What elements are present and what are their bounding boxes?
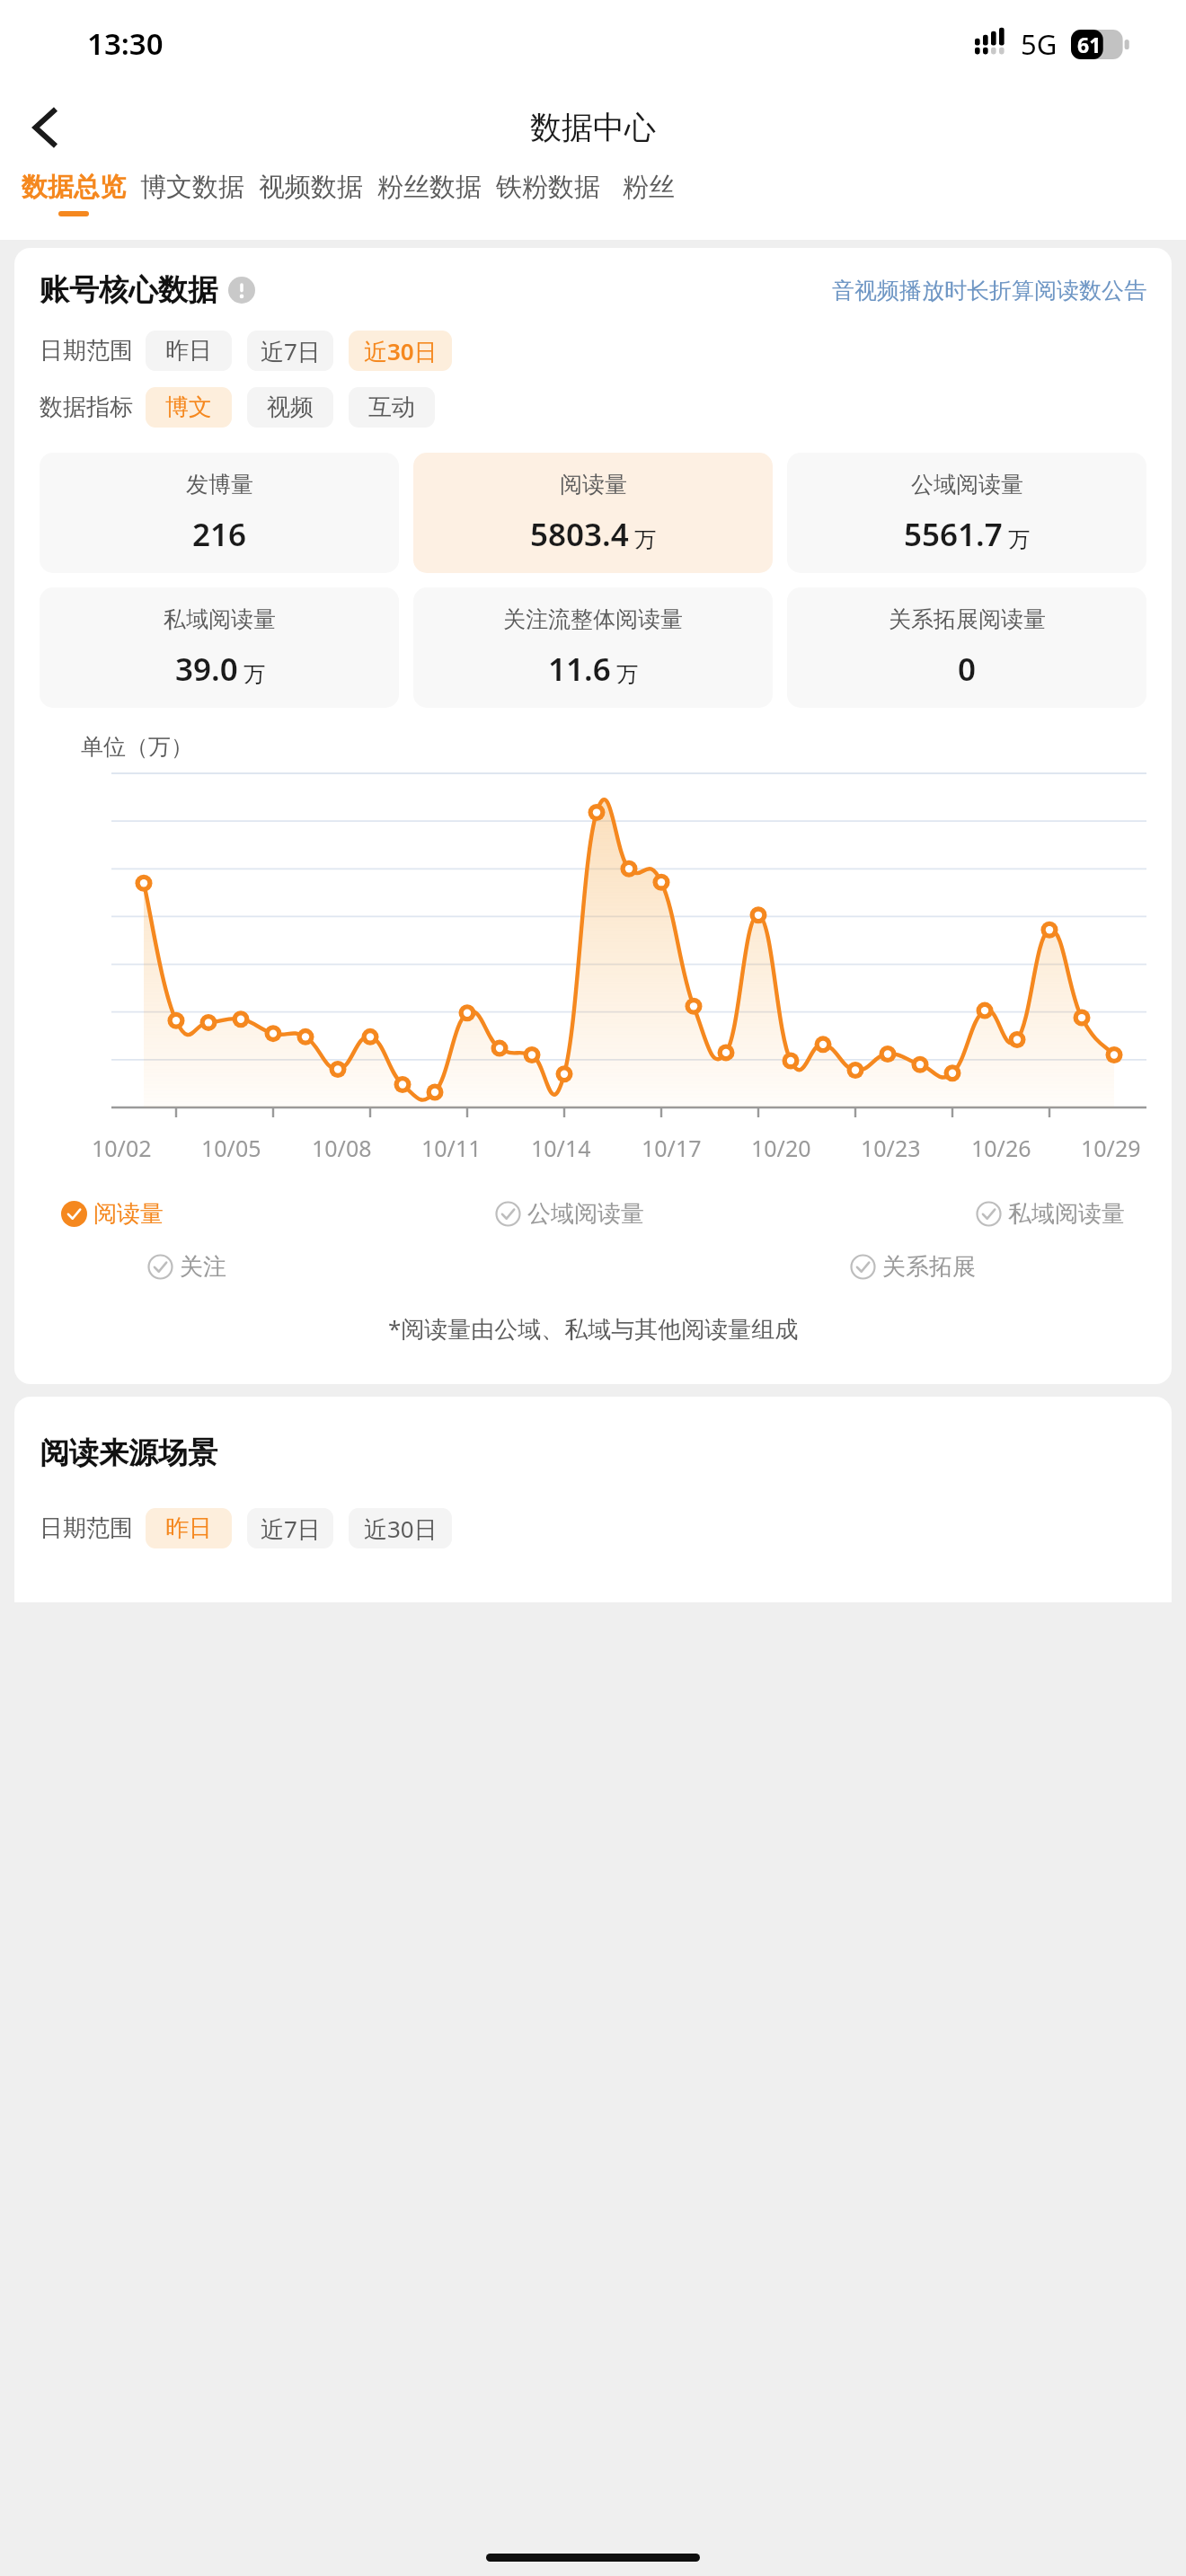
staticText: 阅读来源场景 <box>40 1434 217 1472</box>
staticText: 关系拓展 <box>882 1252 976 1282</box>
staticText: 阅读量 <box>93 1199 164 1229</box>
button[interactable]: 关注流整体阅读量 <box>413 587 773 708</box>
staticText: 10/17 <box>642 1133 702 1163</box>
staticText: 数据指标 <box>40 393 133 422</box>
staticText: 10/23 <box>861 1133 921 1163</box>
staticText: *阅读量由公域、私域与其他阅读量组成 <box>388 1312 799 1345</box>
button[interactable]: 博文数据 <box>138 168 246 240</box>
button[interactable]: 阅读量 <box>61 1199 164 1229</box>
staticText: 数据总览 <box>22 171 126 204</box>
staticText: 数据中心 <box>530 108 656 147</box>
staticText: 私域阅读量 <box>164 605 276 633</box>
staticText: 近30日 <box>364 1513 438 1545</box>
staticText: 10/08 <box>312 1133 372 1163</box>
staticText: 关注流整体阅读量 <box>503 605 683 633</box>
staticText: 视频 <box>267 393 314 422</box>
button[interactable]: 近7日 <box>247 331 333 371</box>
button[interactable]: 互动 <box>349 387 435 428</box>
staticText: 关系拓展阅读量 <box>889 605 1046 633</box>
staticText: 10/11 <box>421 1133 482 1163</box>
staticText: 61 <box>1077 31 1102 58</box>
staticText: 铁粉数据 <box>496 171 600 204</box>
staticText: 5G <box>1021 25 1058 63</box>
staticText: 近7日 <box>261 335 321 367</box>
button[interactable]: 视频 <box>247 387 333 428</box>
button[interactable]: 近7日 <box>247 1508 333 1548</box>
staticText: 10/14 <box>531 1133 591 1163</box>
staticText: 公域阅读量 <box>911 471 1023 498</box>
staticText: 互动 <box>368 393 415 422</box>
button[interactable]: 铁粉数据 <box>494 168 602 240</box>
staticText: 5561.7 <box>904 513 1003 556</box>
staticText: 公域阅读量 <box>527 1199 644 1229</box>
staticText: 10/02 <box>92 1133 152 1163</box>
staticText: 10/26 <box>971 1133 1031 1163</box>
staticText: 关注 <box>180 1252 226 1282</box>
staticText: 日期范围 <box>40 1513 133 1543</box>
staticText: 10/29 <box>1081 1133 1141 1163</box>
button[interactable]: 关系拓展 <box>850 1252 976 1282</box>
button[interactable]: 关注 <box>147 1252 226 1282</box>
button[interactable]: 公域阅读量 <box>495 1199 644 1229</box>
button[interactable]: 公域阅读量 <box>787 453 1146 573</box>
staticText: 单位（万） <box>81 733 193 761</box>
button[interactable]: 私域阅读量 <box>40 587 399 708</box>
button[interactable]: 粉丝 <box>613 168 685 240</box>
staticText: 万 <box>1008 526 1030 553</box>
button[interactable]: 说明 <box>228 277 255 304</box>
button[interactable]: 阅读量 <box>413 453 773 573</box>
button[interactable]: 私域阅读量 <box>976 1199 1125 1229</box>
staticText: 粉丝 <box>623 171 675 204</box>
staticText: 11.6 <box>548 648 611 691</box>
staticText: 216 <box>192 513 247 556</box>
staticText: 博文数据 <box>140 171 244 204</box>
staticText: 13:30 <box>87 23 164 64</box>
button[interactable]: Back <box>13 95 77 160</box>
button[interactable]: 昨日 <box>146 1508 232 1548</box>
staticText: 10/20 <box>751 1133 811 1163</box>
staticText: 博文 <box>165 393 212 422</box>
staticText: 近7日 <box>261 1513 321 1545</box>
staticText: 近30日 <box>364 335 438 367</box>
staticText: 视频数据 <box>259 171 363 204</box>
staticText: 昨日 <box>165 336 212 366</box>
staticText: 阅读量 <box>560 471 627 498</box>
button[interactable]: 发博量 <box>40 453 399 573</box>
button[interactable]: 数据总览 <box>20 168 128 240</box>
button[interactable]: 昨日 <box>146 331 232 371</box>
staticText: 昨日 <box>165 1513 212 1543</box>
staticText: 粉丝数据 <box>377 171 482 204</box>
staticText: 账号核心数据 <box>40 271 217 309</box>
staticText: 万 <box>616 661 638 688</box>
staticText: 0 <box>958 648 977 691</box>
button[interactable]: 关系拓展阅读量 <box>787 587 1146 708</box>
button[interactable]: 视频数据 <box>257 168 365 240</box>
staticText: 10/05 <box>201 1133 261 1163</box>
button[interactable]: 粉丝数据 <box>376 168 483 240</box>
staticText: 私域阅读量 <box>1008 1199 1125 1229</box>
button[interactable]: 音视频播放时长折算阅读数公告 <box>832 277 1146 304</box>
button[interactable]: 近30日 <box>349 1508 452 1548</box>
staticText: 发博量 <box>186 471 253 498</box>
staticText: 5803.4 <box>530 513 629 556</box>
staticText: 日期范围 <box>40 336 133 366</box>
staticText: 万 <box>243 661 265 688</box>
button[interactable]: 博文 <box>146 387 232 428</box>
staticText: 万 <box>634 526 656 553</box>
button[interactable]: 近30日 <box>349 331 452 371</box>
staticText: 39.0 <box>175 648 238 691</box>
